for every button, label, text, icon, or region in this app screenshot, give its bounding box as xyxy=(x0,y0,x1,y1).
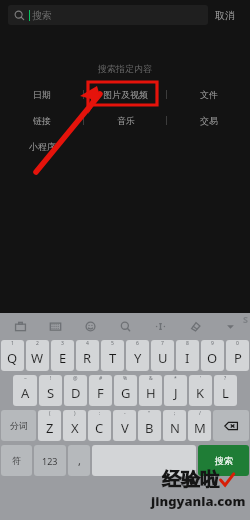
staticText: X xyxy=(71,419,79,437)
staticText: ( xyxy=(49,410,51,417)
staticText: C xyxy=(95,419,104,437)
staticText: 搜索 xyxy=(32,9,52,22)
button[interactable]: , xyxy=(68,445,90,476)
button[interactable]: ) xyxy=(63,410,86,441)
staticText: ! xyxy=(50,375,52,382)
button[interactable]: ; xyxy=(163,410,186,441)
button[interactable]: Clear handwriting xyxy=(185,316,205,336)
staticText: H xyxy=(146,384,156,402)
button[interactable]: : xyxy=(88,410,111,441)
button[interactable]: 搜索 xyxy=(8,5,208,25)
button[interactable]: 取消 xyxy=(208,5,242,26)
button[interactable]: & xyxy=(139,375,162,406)
button[interactable]: 3 xyxy=(51,340,74,371)
button[interactable]: 6 xyxy=(126,340,149,371)
staticText: A xyxy=(21,384,30,402)
button[interactable]: 分词 xyxy=(1,410,36,441)
button[interactable]: % xyxy=(114,375,137,406)
staticText: jingyanla.com xyxy=(151,492,246,510)
staticText: J xyxy=(174,384,178,402)
button[interactable]: 2 xyxy=(26,340,49,371)
staticText: & xyxy=(149,375,153,382)
staticText: * xyxy=(174,375,177,382)
button[interactable]: ' xyxy=(189,375,212,406)
button[interactable]: 日期 xyxy=(25,87,59,102)
staticText: Q xyxy=(7,349,18,367)
staticText: V xyxy=(121,419,129,437)
button[interactable]: Emoji xyxy=(80,316,100,336)
staticText: K xyxy=(196,384,205,402)
staticText: 5 xyxy=(111,340,114,347)
staticText: , xyxy=(78,453,81,468)
staticText: Y xyxy=(134,349,142,367)
staticText: : xyxy=(99,410,101,417)
button[interactable]: 1 xyxy=(1,340,24,371)
button[interactable]: ~ xyxy=(13,375,37,406)
button[interactable]: @ xyxy=(64,375,87,406)
staticText: 123 xyxy=(42,455,58,467)
button[interactable]: 7 xyxy=(151,340,174,371)
button[interactable]: Keyboard layout xyxy=(45,316,65,336)
staticText: S xyxy=(243,313,248,325)
button[interactable]: ? xyxy=(214,375,237,406)
button[interactable]: 图片及视频 xyxy=(95,87,156,102)
button[interactable]: / xyxy=(188,410,211,441)
staticText: 搜索 xyxy=(215,455,233,466)
staticText: R xyxy=(83,349,92,367)
staticText: ? xyxy=(224,375,227,382)
staticText: 取消 xyxy=(215,9,235,22)
staticText: ; xyxy=(174,410,176,417)
staticText: ) xyxy=(74,410,76,417)
staticText: 分词 xyxy=(10,420,28,431)
staticText: 链接 xyxy=(33,115,51,126)
staticText: O xyxy=(207,349,218,367)
staticText: 9 xyxy=(211,340,214,347)
staticText: ~ xyxy=(24,375,27,382)
staticText: 小程序 xyxy=(29,141,56,152)
staticText: P xyxy=(234,349,242,367)
staticText: @ xyxy=(73,375,78,382)
button[interactable]: - xyxy=(113,410,136,441)
button[interactable]: 123 xyxy=(34,445,66,476)
button[interactable]: " xyxy=(138,410,161,441)
staticText: 3 xyxy=(61,340,64,347)
button[interactable]: 小程序 xyxy=(21,139,64,154)
staticText: U xyxy=(158,349,168,367)
staticText: 符 xyxy=(12,455,21,466)
button[interactable]: 音乐 xyxy=(109,113,143,128)
button[interactable]: * xyxy=(164,375,187,406)
button[interactable]: 文件 xyxy=(192,87,226,102)
staticText: 图片及视频 xyxy=(103,89,148,100)
button[interactable]: 5 xyxy=(101,340,124,371)
button[interactable]: 4 xyxy=(76,340,99,371)
staticText: N xyxy=(170,419,180,437)
staticText: 0 xyxy=(236,340,239,347)
button[interactable]: 8 xyxy=(176,340,199,371)
button[interactable]: Move cursor xyxy=(150,316,170,336)
button[interactable]: Backspace xyxy=(213,410,249,441)
button[interactable]: 交易 xyxy=(192,113,226,128)
button[interactable]: # xyxy=(89,375,112,406)
button[interactable]: ! xyxy=(39,375,62,406)
button[interactable]: Toolbox xyxy=(10,316,30,336)
staticText: 日期 xyxy=(33,89,51,100)
staticText: % xyxy=(123,375,128,382)
button[interactable]: Search xyxy=(115,316,135,336)
button[interactable]: 0 xyxy=(226,340,249,371)
button[interactable]: ( xyxy=(38,410,61,441)
button[interactable]: 符 xyxy=(1,445,32,476)
staticText: 文件 xyxy=(200,89,218,100)
staticText: I xyxy=(185,349,190,367)
staticText: T xyxy=(109,349,117,367)
button[interactable]: Space xyxy=(92,445,196,476)
button[interactable]: 搜索 xyxy=(198,445,249,476)
button[interactable]: Hide keyboard xyxy=(220,316,240,336)
staticText: / xyxy=(199,410,201,417)
staticText: 4 xyxy=(86,340,89,347)
staticText: Z xyxy=(46,419,54,437)
button[interactable]: 链接 xyxy=(25,113,59,128)
button[interactable]: 9 xyxy=(201,340,224,371)
staticText: 经验啦 xyxy=(162,468,219,492)
staticText: 6 xyxy=(136,340,139,347)
staticText: E xyxy=(59,349,67,367)
